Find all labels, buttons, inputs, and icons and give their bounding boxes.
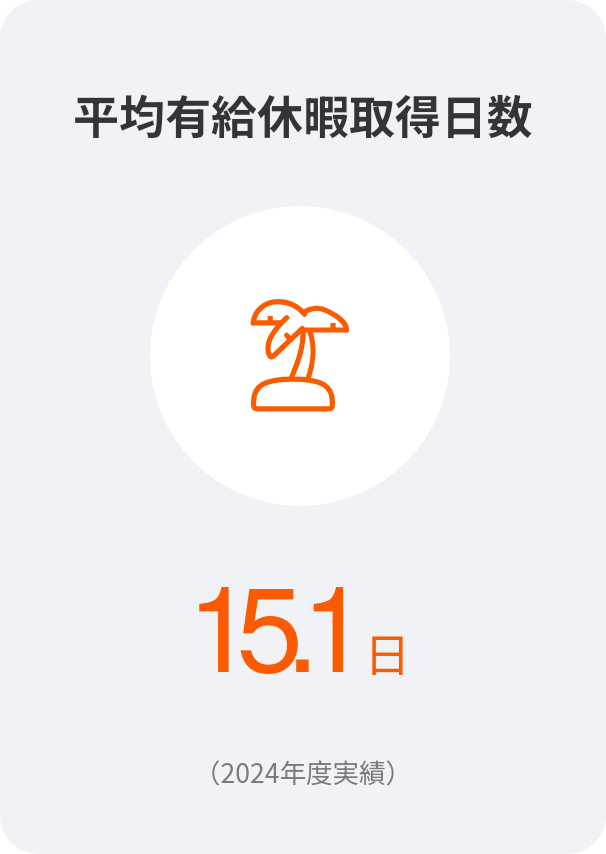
staticText: 日 (364, 619, 410, 686)
other: Paid leave (150, 206, 450, 506)
staticText: 15.1 (187, 534, 351, 706)
staticText: 平均有給休暇取得日数 (73, 81, 533, 148)
staticText: （2024年度実績） (194, 752, 412, 790)
